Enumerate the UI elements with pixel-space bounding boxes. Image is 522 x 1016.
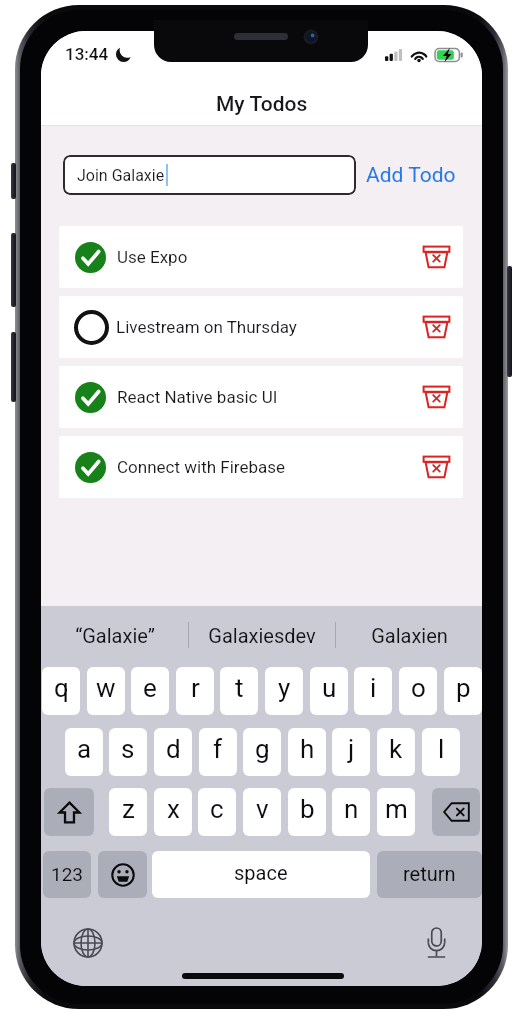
staticText: Galaxien (371, 624, 448, 647)
staticText: x (167, 794, 180, 824)
button[interactable]: Dictation (413, 920, 459, 966)
button[interactable]: j (332, 728, 370, 776)
staticText: e (143, 673, 157, 703)
staticText: space (234, 861, 288, 884)
staticText: d (166, 734, 181, 764)
staticText: n (344, 794, 359, 824)
button[interactable]: Galaxiesdev (189, 606, 335, 664)
staticText: f (213, 734, 223, 764)
button[interactable]: f (199, 728, 237, 776)
staticText: j (348, 734, 355, 764)
button[interactable]: Delete todo (416, 447, 456, 487)
button[interactable]: Shift (44, 788, 94, 836)
staticText: z (122, 794, 135, 824)
button[interactable]: Livestream on Thursday (59, 296, 463, 358)
button[interactable]: i (354, 667, 392, 715)
staticText: h (300, 734, 315, 764)
button[interactable]: Galaxien (336, 606, 482, 664)
staticText: s (121, 734, 135, 764)
button[interactable]: Delete todo (416, 377, 456, 417)
staticText: v (256, 794, 269, 824)
staticText: k (389, 734, 403, 764)
button[interactable]: h (288, 728, 326, 776)
staticText: 123 (51, 863, 84, 885)
staticText: Add Todo (366, 163, 456, 188)
button[interactable]: b (288, 788, 326, 836)
button[interactable]: z (109, 788, 147, 836)
button[interactable]: q (42, 667, 80, 715)
button[interactable]: a (65, 728, 103, 776)
staticText: React Native basic UI (117, 387, 278, 407)
button[interactable]: w (87, 667, 125, 715)
button[interactable]: space (152, 851, 370, 898)
staticText: p (456, 673, 471, 703)
button[interactable]: l (422, 728, 460, 776)
button[interactable]: 123 (43, 851, 91, 898)
button[interactable]: s (109, 728, 147, 776)
button[interactable]: Add Todo (362, 159, 460, 191)
button[interactable]: g (243, 728, 281, 776)
button[interactable]: t (220, 667, 258, 715)
staticText: “Galaxie” (75, 624, 155, 647)
button[interactable]: o (399, 667, 437, 715)
staticText: q (54, 673, 69, 703)
button[interactable]: React Native basic UI (59, 366, 463, 428)
button[interactable]: Emoji keyboard (98, 851, 147, 898)
staticText: y (278, 673, 291, 703)
staticText: w (96, 673, 116, 703)
button[interactable]: n (332, 788, 370, 836)
button[interactable]: Connect with Firebase (59, 436, 463, 498)
staticText: t (235, 673, 244, 703)
button[interactable]: r (176, 667, 214, 715)
staticText: o (411, 673, 426, 703)
button[interactable]: return (377, 851, 482, 898)
button[interactable]: m (377, 788, 415, 836)
button[interactable]: y (265, 667, 303, 715)
staticText: m (385, 794, 408, 824)
button[interactable]: c (198, 788, 236, 836)
button[interactable]: d (154, 728, 192, 776)
staticText: Use Expo (117, 247, 188, 267)
button[interactable]: Use Expo (59, 226, 463, 288)
button[interactable]: Change keyboard (65, 920, 111, 966)
staticText: Galaxiesdev (208, 624, 316, 647)
button[interactable]: u (310, 667, 348, 715)
staticText: Livestream on Thursday (116, 317, 297, 337)
button[interactable]: Backspace (432, 788, 480, 836)
staticText: i (370, 673, 377, 703)
staticText: r (191, 673, 200, 703)
staticText: l (438, 734, 445, 764)
staticText: Join Galaxie (77, 166, 165, 185)
button[interactable]: x (154, 788, 192, 836)
button[interactable]: k (377, 728, 415, 776)
button[interactable]: v (243, 788, 281, 836)
button[interactable]: “Galaxie” (41, 606, 188, 664)
staticText: return (403, 862, 456, 885)
staticText: My Todos (216, 92, 308, 117)
button[interactable]: Join Galaxie (63, 155, 356, 195)
staticText: c (210, 794, 224, 824)
staticText: a (77, 734, 92, 764)
button[interactable]: Delete todo (416, 307, 456, 347)
button[interactable]: p (444, 667, 482, 715)
staticText: 13:44 (65, 44, 109, 64)
button[interactable]: e (131, 667, 169, 715)
staticText: u (322, 673, 337, 703)
button[interactable]: Delete todo (416, 237, 456, 277)
staticText: Connect with Firebase (117, 457, 286, 477)
staticText: b (300, 794, 315, 824)
staticText: g (255, 734, 270, 764)
